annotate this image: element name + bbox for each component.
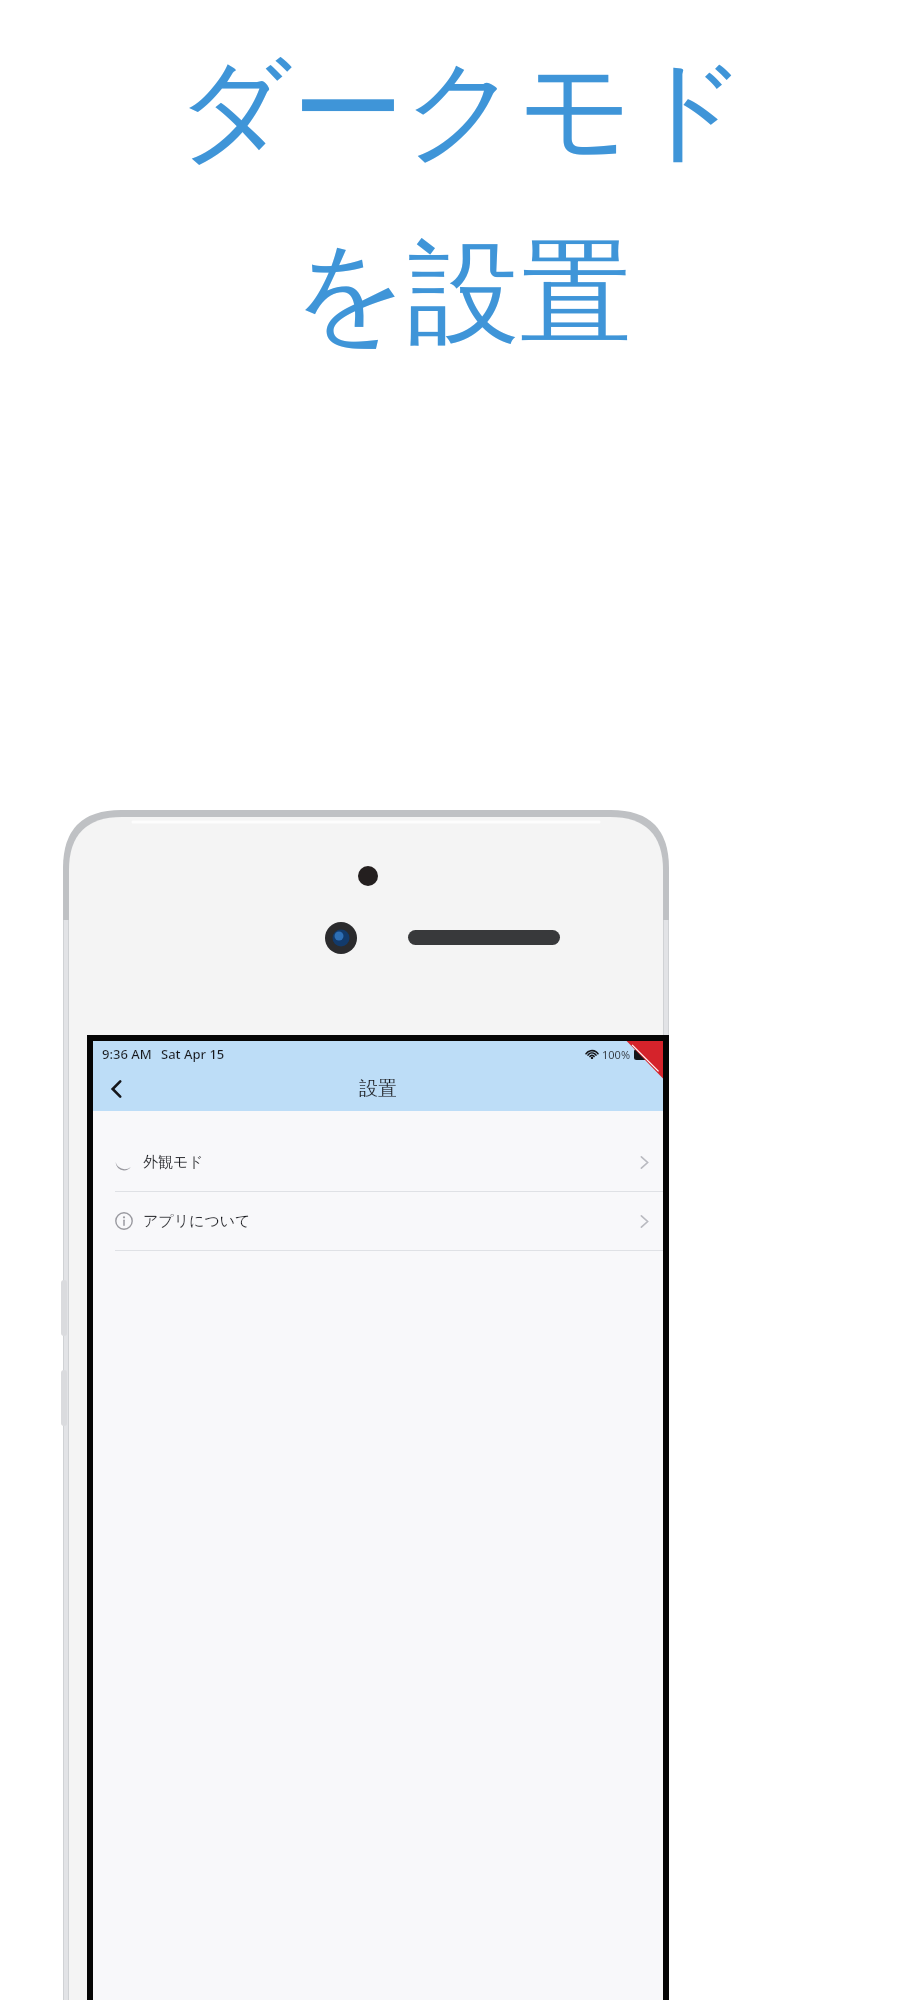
- staticText: Sat Apr 15: [161, 1045, 225, 1063]
- staticText: アプリについて: [143, 1212, 251, 1231]
- staticText: 100%: [602, 1047, 631, 1062]
- staticText: 9:36 AM: [102, 1045, 152, 1063]
- button[interactable]: Back: [97, 1069, 137, 1109]
- button[interactable]: アプリについて: [93, 1192, 663, 1250]
- staticText: ダークモド: [177, 40, 748, 181]
- button[interactable]: 外観モド: [93, 1133, 663, 1191]
- staticText: を設置: [293, 223, 632, 364]
- staticText: 外観モド: [143, 1153, 204, 1172]
- staticText: 設置: [359, 1077, 397, 1101]
